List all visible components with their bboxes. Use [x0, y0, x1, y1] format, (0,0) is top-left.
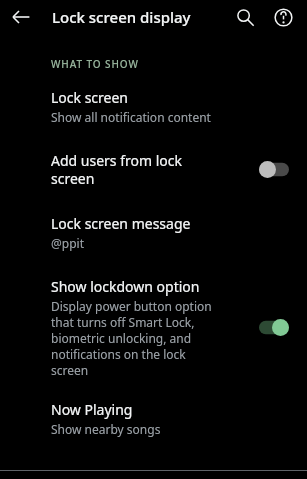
staticText: Now Playing [51, 400, 133, 419]
staticText: Show nearby songs [51, 421, 161, 437]
staticText: Add users from lock screen [51, 151, 182, 188]
staticText: Lock screen [51, 88, 129, 107]
staticText: @ppit [51, 235, 84, 251]
button[interactable]: Now Playing [0, 400, 307, 437]
button[interactable]: Search [233, 5, 257, 29]
button[interactable]: Lock screen message [0, 214, 307, 251]
staticText: Show all notification content [51, 109, 211, 125]
button[interactable]: Show lockdown option [0, 277, 307, 378]
staticText: WHAT TO SHOW [51, 57, 139, 71]
staticText: Lock screen message [51, 214, 191, 233]
button[interactable]: Add users from lock screen [0, 151, 307, 188]
staticText: Lock screen display [52, 7, 233, 27]
staticText: Show lockdown option [51, 277, 200, 296]
button[interactable]: Help [271, 5, 295, 29]
staticText: Display power button option that turns o… [51, 298, 212, 378]
button[interactable]: Lock screen [0, 88, 307, 125]
button[interactable]: Back [10, 6, 32, 28]
